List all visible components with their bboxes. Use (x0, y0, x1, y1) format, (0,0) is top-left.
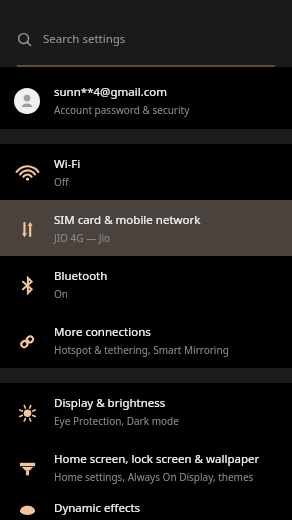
button[interactable]: Dynamic effects (0, 495, 292, 520)
staticText: sunn**4@gmail.com (54, 84, 167, 100)
button[interactable]: Display & brightness (0, 383, 292, 439)
staticText: JIO 4G — Jio (54, 231, 111, 245)
staticText: Hotspot & tethering, Smart Mirroring (54, 343, 229, 357)
staticText: Eye Protection, Dark mode (54, 414, 179, 428)
button[interactable]: sunn**4@gmail.com (0, 72, 292, 129)
button[interactable]: SIM card & mobile network (0, 200, 292, 256)
staticText: Home settings, Always On Display, themes (54, 470, 254, 484)
button[interactable]: Home screen, lock screen & wallpaper (0, 439, 292, 495)
staticText: Dynamic effects (54, 500, 141, 516)
staticText: On (54, 287, 68, 301)
button[interactable]: Search settings (0, 10, 292, 67)
staticText: Display & brightness (54, 395, 166, 411)
staticText: SIM card & mobile network (54, 212, 201, 228)
staticText: Account password & security (54, 103, 190, 117)
button[interactable]: Wi-Fi (0, 144, 292, 200)
staticText: Wi-Fi (54, 156, 81, 172)
staticText: Search settings (43, 31, 126, 47)
button[interactable]: Bluetooth (0, 256, 292, 312)
staticText: More connections (54, 324, 151, 340)
staticText: Bluetooth (54, 268, 108, 284)
staticText: Off (54, 175, 69, 189)
staticText: Home screen, lock screen & wallpaper (54, 451, 260, 467)
button[interactable]: More connections (0, 312, 292, 368)
